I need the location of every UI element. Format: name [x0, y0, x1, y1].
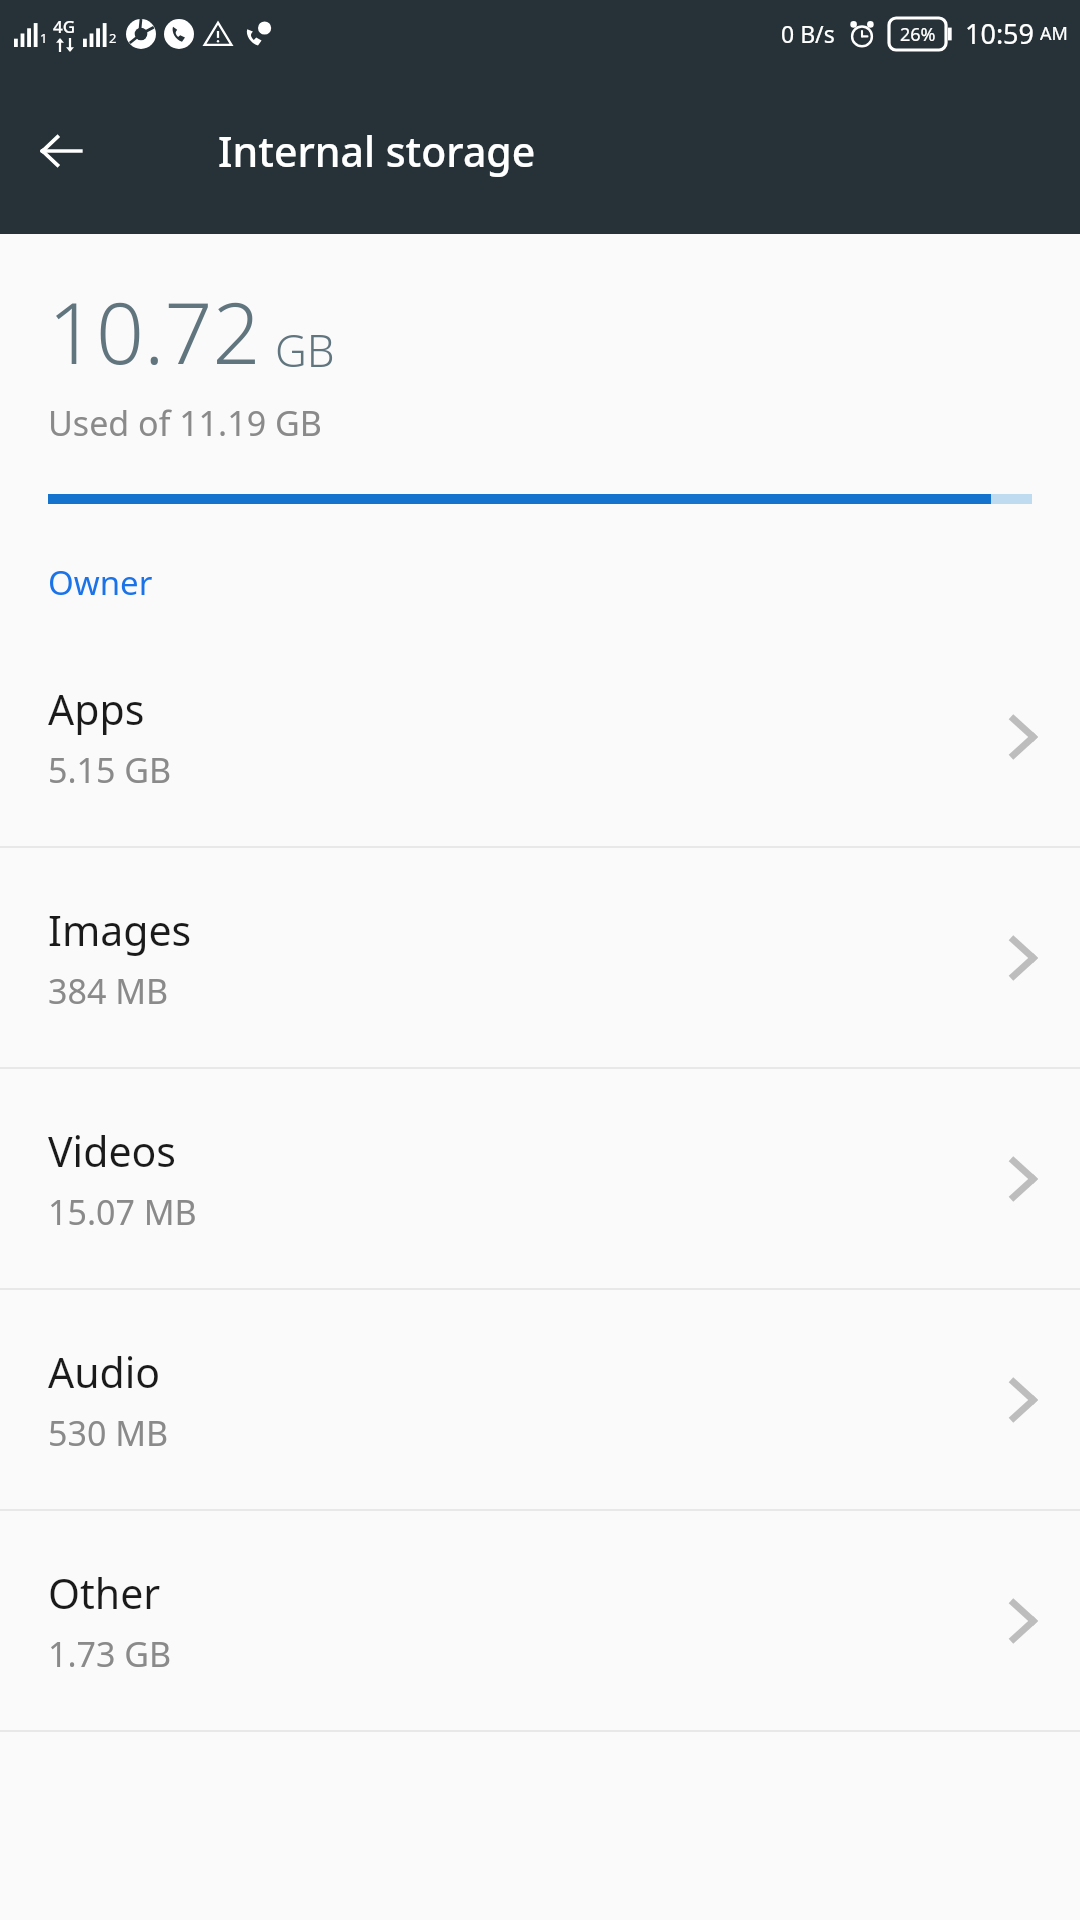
- staticText: 10.72: [48, 274, 261, 388]
- button[interactable]: Images: [0, 848, 1080, 1067]
- staticText: Owner: [48, 560, 153, 605]
- button[interactable]: Other: [0, 1511, 1080, 1730]
- staticText: Images: [48, 902, 192, 958]
- staticText: GB: [275, 320, 335, 380]
- staticText: 5.15 GB: [48, 747, 172, 793]
- staticText: 2: [109, 29, 117, 47]
- staticText: Apps: [48, 681, 145, 737]
- button[interactable]: Videos: [0, 1069, 1080, 1288]
- button[interactable]: Audio: [0, 1290, 1080, 1509]
- staticText: AM: [1040, 21, 1068, 46]
- staticText: Videos: [48, 1123, 176, 1179]
- staticText: 15.07 MB: [48, 1189, 197, 1235]
- staticText: 26%: [900, 22, 936, 47]
- staticText: 384 MB: [48, 968, 169, 1014]
- staticText: 4G: [53, 15, 76, 38]
- staticText: 1.73 GB: [48, 1631, 172, 1677]
- staticText: 530 MB: [48, 1410, 169, 1456]
- button[interactable]: Apps: [0, 627, 1080, 846]
- staticText: Audio: [48, 1344, 161, 1400]
- staticText: 1: [40, 29, 48, 47]
- staticText: Other: [48, 1565, 161, 1621]
- staticText: 0 B/s: [781, 18, 835, 49]
- button[interactable]: Back: [30, 120, 92, 182]
- staticText: Used of 11.19 GB: [48, 400, 322, 446]
- staticText: Internal storage: [218, 123, 536, 179]
- staticText: 10:59: [965, 15, 1035, 52]
